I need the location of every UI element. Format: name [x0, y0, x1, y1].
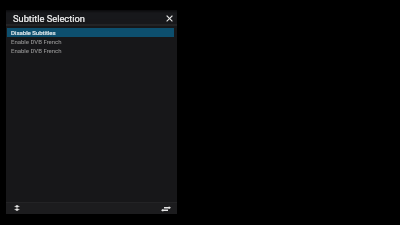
button[interactable]: Enable DVB French — [7, 46, 174, 55]
button[interactable]: Close — [163, 11, 176, 24]
button[interactable]: Enable DVB French — [7, 37, 174, 46]
staticText: Enable DVB French — [11, 47, 62, 54]
button[interactable]: Resize horizontally — [160, 203, 171, 214]
button[interactable]: Disable Subtitles — [7, 28, 174, 37]
staticText: Subtitle Selection — [13, 13, 85, 24]
staticText: Enable DVB French — [11, 38, 62, 45]
staticText: Disable Subtitles — [11, 29, 56, 36]
button[interactable]: Resize vertically — [11, 203, 22, 214]
